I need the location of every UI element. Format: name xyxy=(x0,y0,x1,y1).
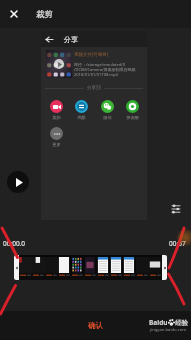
staticText: 微信 xyxy=(103,115,112,120)
button[interactable]: Play xyxy=(7,171,29,193)
staticText: 裁剪 xyxy=(36,9,53,20)
button[interactable]: 朋友圈 xyxy=(122,100,143,120)
staticText: 朋友圈 xyxy=(126,115,139,120)
staticText: 优酷 xyxy=(77,115,86,120)
staticText: 分享 xyxy=(64,35,78,44)
button[interactable]: Trim start xyxy=(14,255,19,280)
button[interactable]: Adjust xyxy=(168,201,184,217)
button[interactable]: 美拍 xyxy=(46,100,67,120)
staticText: Baidu xyxy=(149,318,168,327)
staticText: 路径：/storage/emulated/0 xyxy=(74,62,125,67)
staticText: 视频文件(可播放) xyxy=(74,51,109,57)
staticText: 确认 xyxy=(88,321,103,330)
button[interactable]: 微信 xyxy=(97,100,118,120)
staticText: 00:00.0 xyxy=(3,239,26,248)
button[interactable]: Back xyxy=(41,31,57,47)
staticText: 分享到 xyxy=(87,85,101,91)
button[interactable]: 更多 xyxy=(46,127,67,147)
staticText: 00:57 xyxy=(169,239,186,248)
staticText: 更多 xyxy=(52,142,61,147)
button[interactable]: 确认 xyxy=(66,316,125,335)
button[interactable]: Close xyxy=(0,0,28,28)
staticText: 2018/01/01/01708.mp4 xyxy=(74,72,118,77)
staticText: jingyan.baidu.com xyxy=(150,327,187,333)
staticText: 美拍 xyxy=(52,115,61,120)
staticText: 经验 xyxy=(175,319,188,327)
staticText: /DCIM/Camera/屏幕录制缓存视频 xyxy=(74,67,136,72)
button[interactable]: Trim end xyxy=(162,255,167,280)
button[interactable]: 优酷 xyxy=(71,100,92,120)
